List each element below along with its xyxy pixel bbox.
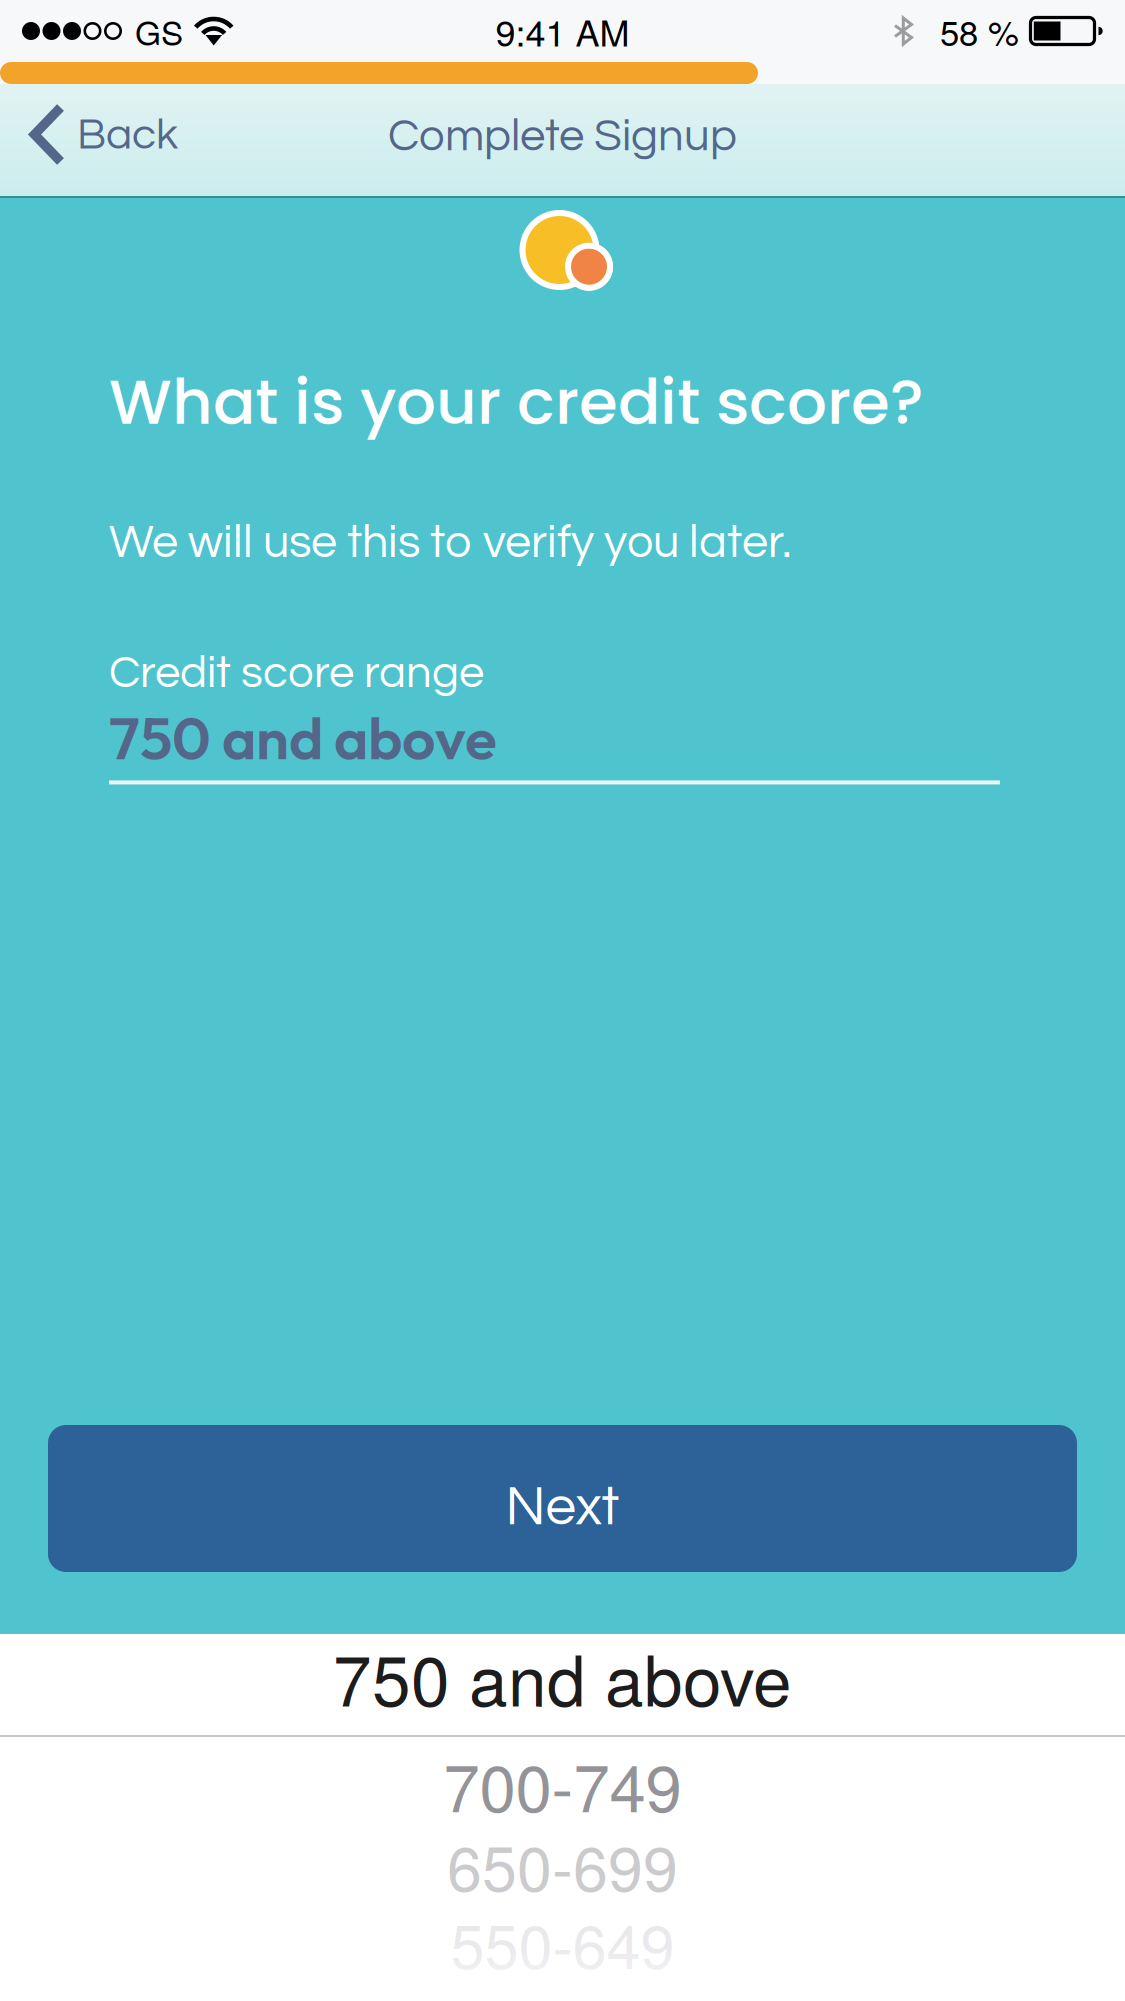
staticText: Next xyxy=(505,1479,619,1536)
button[interactable]: Next xyxy=(48,1425,1077,1572)
staticText: 650-699 xyxy=(447,1820,678,1909)
staticText: 750 and above xyxy=(109,700,497,774)
staticText: Credit score range xyxy=(109,650,484,696)
staticText: We will use this to verify you later. xyxy=(109,519,791,567)
button[interactable]: 750 and above xyxy=(0,1634,1125,1735)
button[interactable]: 700-749 xyxy=(0,1737,1125,1843)
staticText: GS xyxy=(135,7,183,55)
button[interactable]: 550-649 xyxy=(0,1924,1125,2001)
staticText: 700-749 xyxy=(443,1737,681,1831)
button[interactable]: Back xyxy=(0,85,196,197)
staticText: 9:41 AM xyxy=(495,5,629,57)
staticText: Complete Signup xyxy=(388,113,737,160)
staticText: Back xyxy=(77,112,178,158)
staticText: 58 % xyxy=(940,6,1019,56)
staticText: 550-649 xyxy=(450,1899,674,1986)
staticText: 750 and above xyxy=(333,1627,792,1726)
staticText: What is your credit score? xyxy=(109,358,924,446)
button[interactable]: 650-699 xyxy=(0,1843,1125,1924)
